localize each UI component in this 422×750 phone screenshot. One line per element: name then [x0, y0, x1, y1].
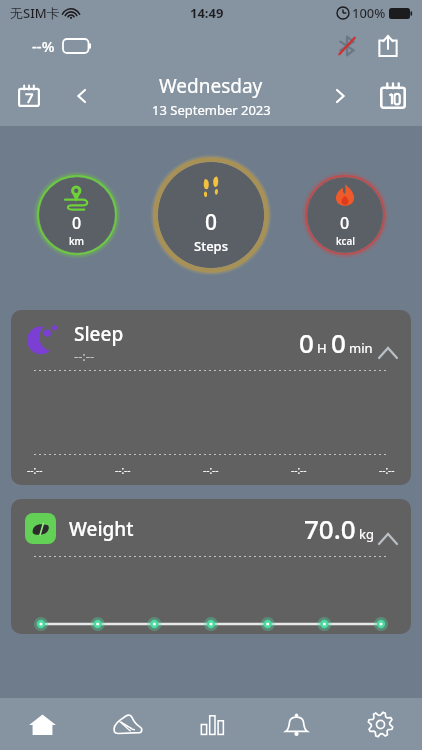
button[interactable]: Home — [0, 698, 85, 750]
button[interactable]: Alarms — [254, 698, 338, 750]
button[interactable]: 0 — [301, 171, 389, 259]
button[interactable]: Activity — [85, 698, 170, 750]
staticText: 13 September 2023 — [152, 101, 271, 119]
staticText: --:-- — [379, 463, 395, 477]
staticText: 0 — [72, 212, 82, 234]
button[interactable]: Weight — [11, 499, 411, 634]
staticText: Steps — [194, 237, 228, 255]
button[interactable]: Wednesday — [106, 66, 316, 126]
staticText: 0 — [340, 212, 350, 234]
button[interactable]: Previous day — [58, 66, 106, 126]
staticText: 0 — [331, 325, 346, 360]
staticText: --:-- — [115, 463, 131, 477]
staticText: 100% — [352, 4, 386, 22]
staticText: Wednesday — [159, 73, 263, 99]
button[interactable]: Settings — [338, 698, 422, 750]
staticText: 70.0 — [304, 511, 356, 546]
button[interactable]: Sleep — [11, 310, 411, 485]
button[interactable]: 0 — [150, 154, 272, 276]
button[interactable]: 0 — [33, 171, 121, 259]
staticText: 0 — [205, 208, 218, 237]
staticText: Sleep — [74, 321, 124, 347]
button[interactable]: Week view — [0, 66, 58, 126]
staticText: --:-- — [203, 463, 219, 477]
staticText: kg — [359, 525, 374, 543]
staticText: 14:49 — [190, 4, 224, 22]
button[interactable]: Share — [370, 28, 406, 64]
staticText: H — [317, 339, 327, 357]
staticText: 0 — [299, 325, 314, 360]
staticText: --:-- — [27, 463, 43, 477]
staticText: --:-- — [291, 463, 307, 477]
button[interactable]: Calendar — [364, 66, 422, 126]
staticText: --:-- — [74, 347, 95, 365]
staticText: --% — [32, 36, 55, 56]
staticText: km — [69, 234, 85, 248]
staticText: min — [349, 339, 373, 357]
button[interactable]: Statistics — [170, 698, 254, 750]
staticText: 无SIM卡 — [10, 4, 60, 22]
staticText: Weight — [69, 516, 134, 542]
staticText: kcal — [336, 234, 355, 248]
button[interactable]: Bluetooth disconnected — [330, 29, 364, 63]
button[interactable]: Next day — [316, 66, 364, 126]
